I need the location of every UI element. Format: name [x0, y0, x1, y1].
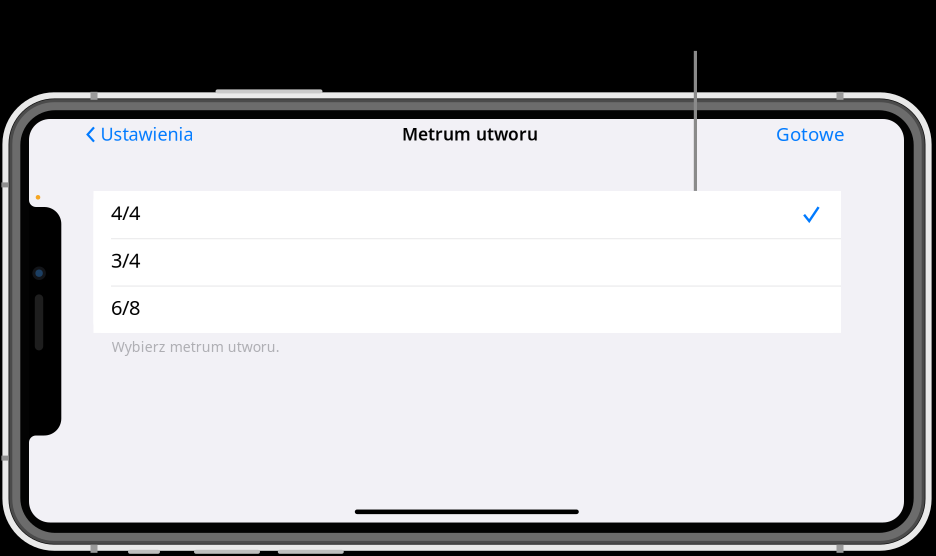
staticText: 4/4 [111, 199, 140, 226]
button[interactable]: 3/4 [93, 238, 841, 286]
staticText: 3/4 [111, 246, 140, 273]
button[interactable]: 4/4 [93, 191, 841, 238]
staticText: 6/8 [111, 294, 140, 321]
button[interactable]: 6/8 [93, 286, 841, 333]
staticText: Ustawienia [100, 121, 193, 146]
staticText: Gotowe [776, 121, 845, 146]
button[interactable]: Gotowe [765, 118, 855, 152]
staticText: Wybierz metrum utworu. [112, 337, 280, 356]
staticText: Metrum utworu [402, 122, 538, 146]
button[interactable]: Ustawienia [77, 118, 195, 152]
